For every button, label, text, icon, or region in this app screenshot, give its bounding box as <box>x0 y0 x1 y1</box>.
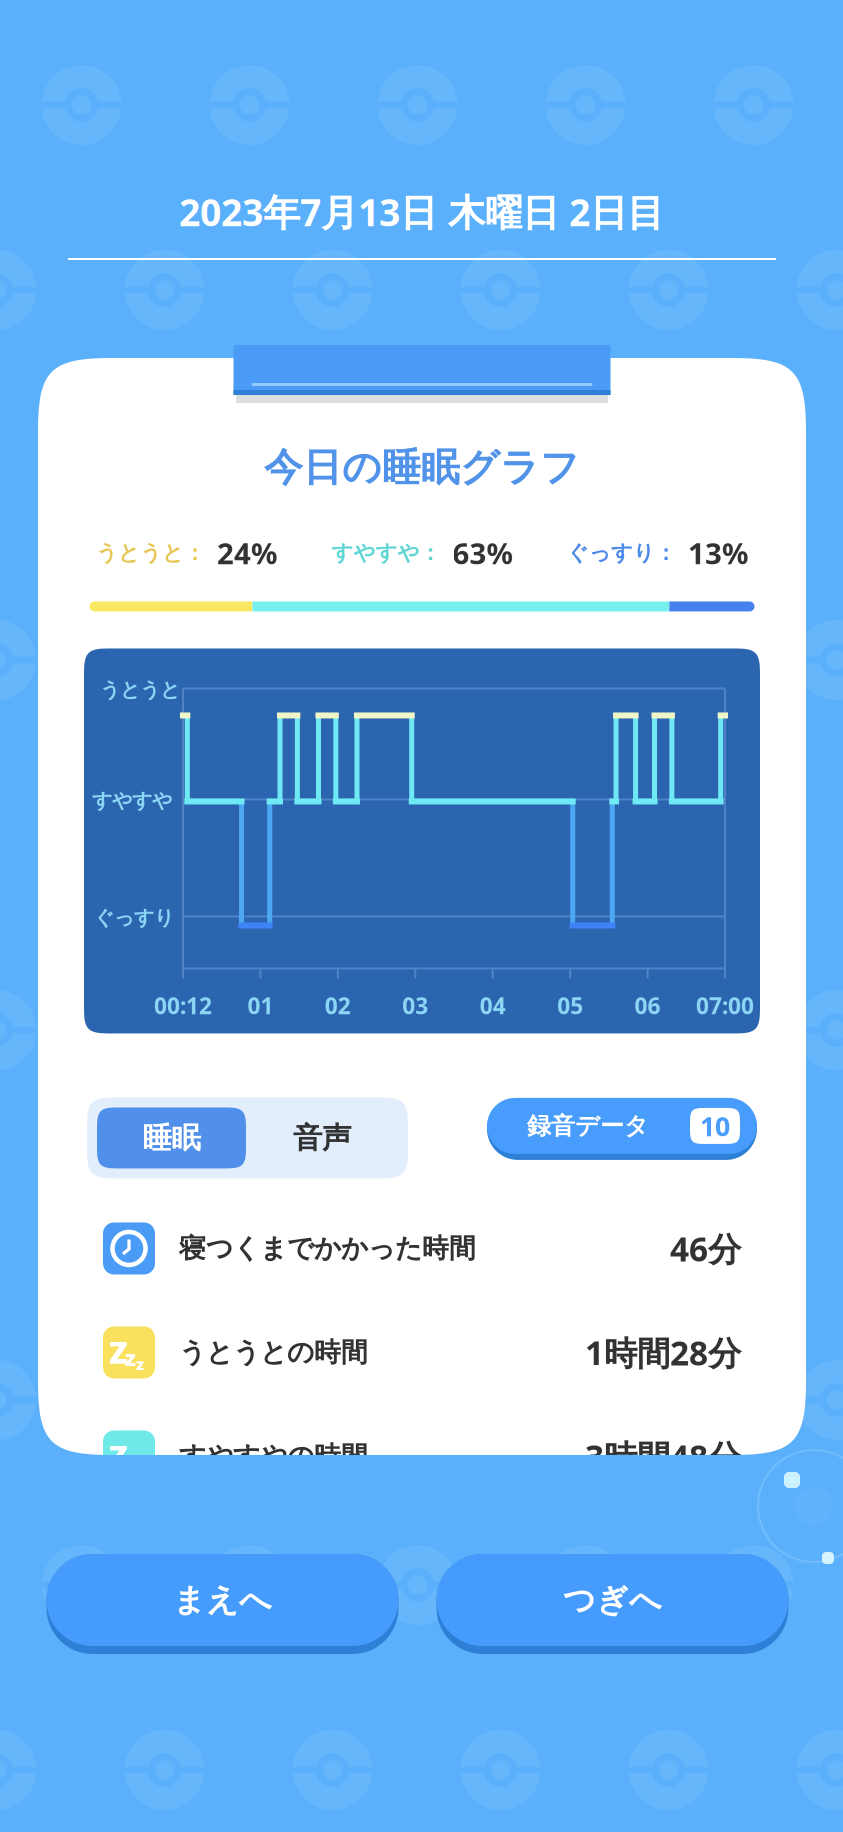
staticText: まえへ <box>173 1580 272 1620</box>
staticText: うとうと： <box>96 540 205 566</box>
staticText: 05 <box>557 990 583 1020</box>
staticText: 01 <box>247 990 273 1020</box>
button[interactable]: Z <box>103 1508 741 1612</box>
staticText: 00:12 <box>154 990 212 1020</box>
staticText: 06 <box>635 990 661 1020</box>
button[interactable]: Z <box>103 1300 741 1404</box>
staticText: 音声 <box>293 1120 351 1156</box>
button[interactable]: 睡眠 <box>97 1107 246 1168</box>
staticText: 07:00 <box>696 990 754 1020</box>
staticText: 04 <box>480 990 506 1020</box>
staticText: 睡眠 <box>142 1120 200 1156</box>
staticText: z <box>136 1353 144 1375</box>
staticText: z <box>125 1551 136 1580</box>
button[interactable]: 寝つくまでかかった時間 <box>103 1196 741 1300</box>
staticText: Z <box>109 1435 128 1476</box>
staticText: すやすやの時間 <box>179 1440 368 1473</box>
staticText: 2023年7月13日 木曜日 2日目 <box>179 187 664 237</box>
staticText: 13% <box>688 533 748 572</box>
staticText: z <box>125 1447 136 1476</box>
staticText: Z <box>109 1331 128 1372</box>
staticText: 1時間28分 <box>585 1330 741 1375</box>
button[interactable]: Z <box>103 1404 741 1508</box>
staticText: Z <box>109 1539 128 1580</box>
staticText: ぐっすり： <box>567 540 676 566</box>
staticText: 今日の睡眠グラフ <box>264 444 580 491</box>
staticText: うとうとの時間 <box>179 1336 368 1369</box>
staticText: ぐっすり <box>94 905 174 930</box>
staticText: 02 <box>325 990 351 1020</box>
staticText: つぎへ <box>563 1580 662 1620</box>
staticText: 録音データ <box>527 1111 649 1141</box>
staticText: 0時間46分 <box>585 1538 741 1583</box>
staticText: 3時間48分 <box>585 1434 741 1479</box>
staticText: うとうと <box>100 677 180 702</box>
staticText: z <box>125 1343 136 1372</box>
button[interactable]: まえへ <box>46 1554 398 1654</box>
staticText: すやすや <box>92 788 172 813</box>
staticText: 46分 <box>670 1226 741 1271</box>
staticText: ぐっすりの時間 <box>179 1544 368 1577</box>
staticText: すやすや： <box>331 540 440 566</box>
staticText: 24% <box>217 533 277 572</box>
button[interactable]: つぎへ <box>436 1554 788 1654</box>
staticText: 寝つくまでかかった時間 <box>179 1232 476 1265</box>
button[interactable]: 音声 <box>246 1107 398 1168</box>
staticText: 10 <box>700 1108 730 1144</box>
staticText: 03 <box>402 990 428 1020</box>
staticText: 63% <box>452 533 512 572</box>
button[interactable]: 録音データ <box>487 1107 757 1169</box>
